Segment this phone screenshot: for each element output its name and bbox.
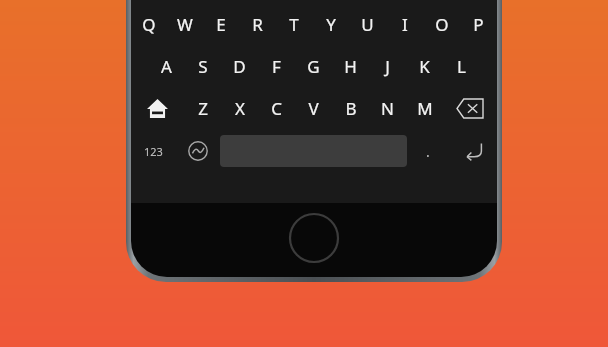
staticText: M (417, 97, 433, 120)
staticText: C (271, 97, 282, 120)
staticText: J (385, 55, 390, 78)
button[interactable]: P (460, 3, 497, 45)
button[interactable]: Return (448, 129, 497, 173)
button[interactable]: F (258, 45, 295, 87)
staticText: O (435, 13, 449, 36)
staticText: R (252, 13, 263, 36)
button[interactable]: W (167, 3, 203, 45)
staticText: X (235, 97, 245, 120)
button[interactable]: Y (312, 3, 349, 45)
button[interactable]: . (407, 129, 448, 173)
button[interactable]: Home (288, 212, 340, 264)
button[interactable]: U (349, 3, 386, 45)
staticText: K (419, 55, 430, 78)
staticText: U (361, 13, 374, 36)
button[interactable]: V (295, 87, 332, 129)
staticText: S (198, 55, 208, 78)
button[interactable]: C (258, 87, 295, 129)
staticText: V (308, 97, 319, 120)
button[interactable]: Z (184, 87, 221, 129)
button[interactable]: 123 (131, 129, 175, 173)
staticText: F (272, 55, 281, 78)
staticText: 123 (144, 144, 163, 159)
button[interactable]: M (406, 87, 443, 129)
button[interactable]: Shift (131, 87, 184, 129)
staticText: Y (326, 13, 336, 36)
button[interactable]: A (148, 45, 184, 87)
button[interactable]: Voice input (175, 129, 220, 173)
button[interactable]: Backspace (443, 87, 497, 129)
staticText: . (426, 142, 430, 161)
staticText: N (381, 97, 394, 120)
button[interactable]: B (332, 87, 369, 129)
staticText: G (307, 55, 320, 78)
staticText: W (177, 13, 193, 36)
button[interactable]: J (369, 45, 406, 87)
button[interactable]: Q (131, 3, 167, 45)
staticText: B (345, 97, 357, 120)
staticText: D (233, 55, 246, 78)
button[interactable]: R (239, 3, 275, 45)
staticText: P (473, 13, 484, 36)
button[interactable]: G (295, 45, 332, 87)
button[interactable]: D (221, 45, 258, 87)
button[interactable]: T (275, 3, 312, 45)
button[interactable]: O (423, 3, 460, 45)
button[interactable]: H (332, 45, 369, 87)
button[interactable]: X (221, 87, 258, 129)
staticText: L (457, 55, 466, 78)
staticText: I (402, 13, 408, 36)
staticText: Q (142, 13, 156, 36)
staticText: A (161, 55, 172, 78)
button[interactable]: L (443, 45, 480, 87)
staticText: T (289, 13, 299, 36)
button[interactable]: E (203, 3, 239, 45)
button[interactable]: K (406, 45, 443, 87)
staticText: E (216, 13, 226, 36)
staticText: Z (198, 97, 208, 120)
button[interactable]: N (369, 87, 406, 129)
button[interactable]: I (386, 3, 423, 45)
staticText: H (344, 55, 357, 78)
button[interactable]: S (184, 45, 221, 87)
